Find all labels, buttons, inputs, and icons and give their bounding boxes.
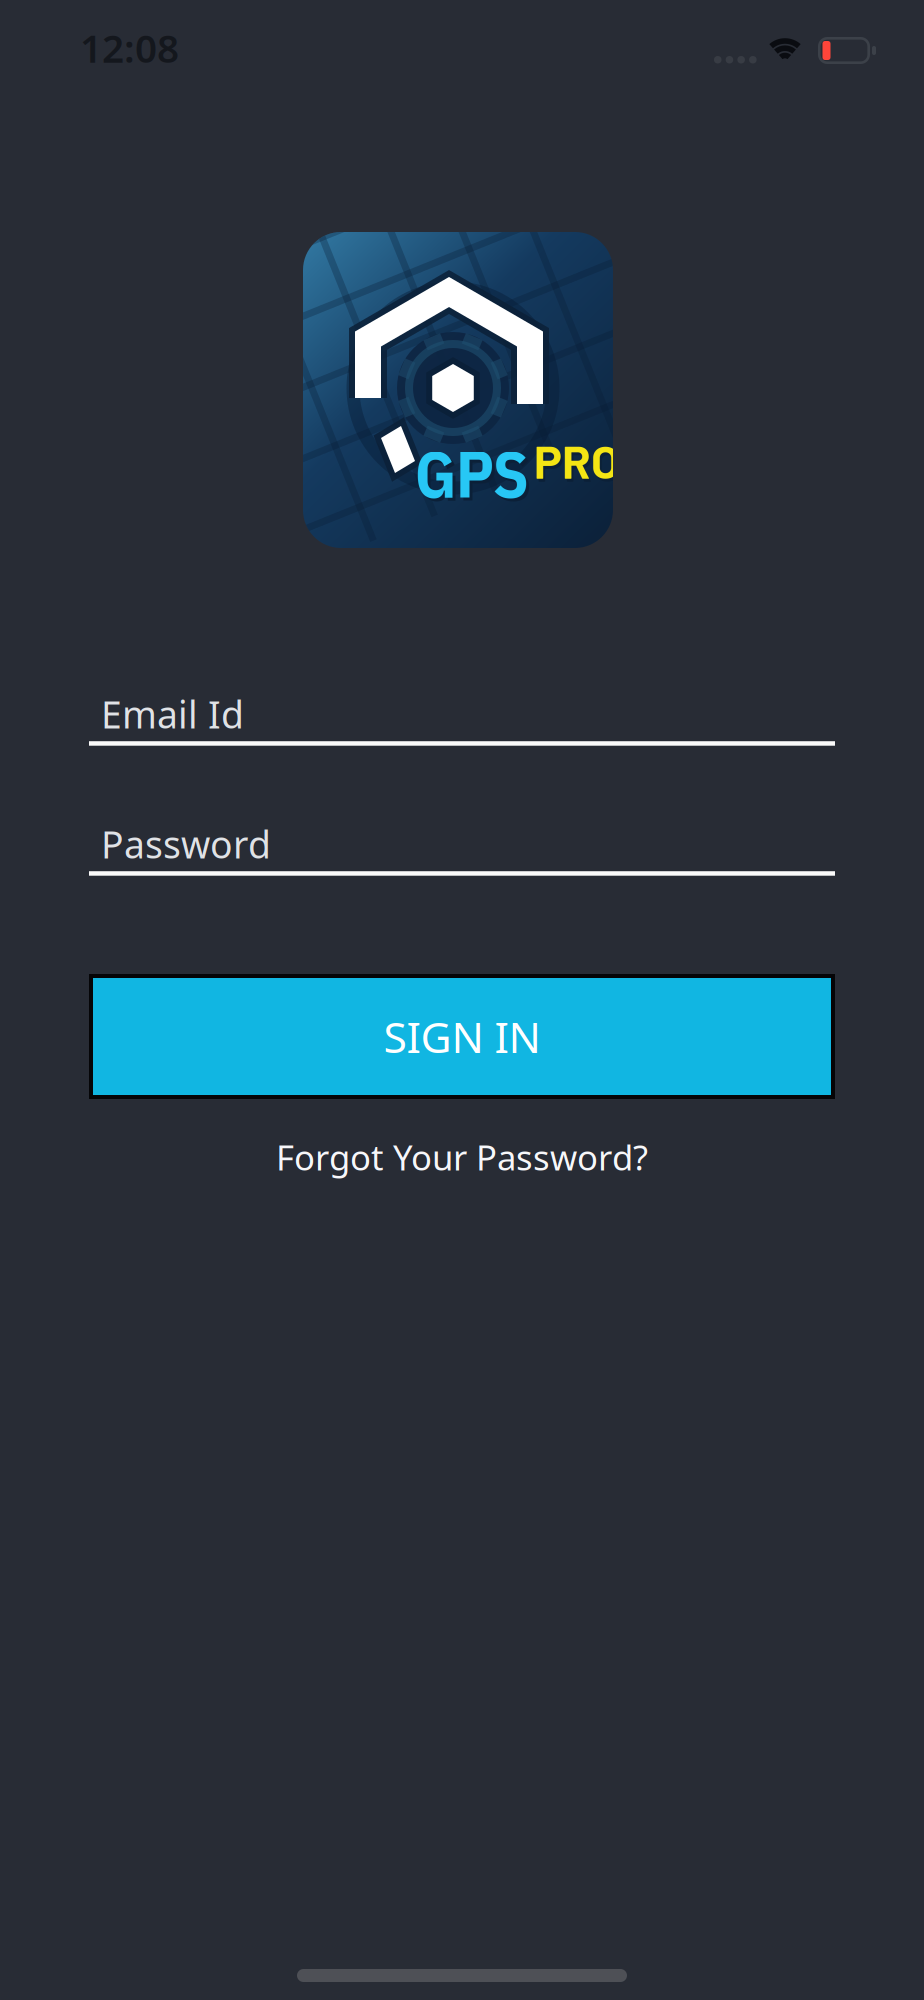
- staticText: PRO: [534, 432, 620, 488]
- staticText: GPS: [418, 435, 532, 518]
- button[interactable]: SIGN IN: [89, 974, 835, 1099]
- staticText: Email Id: [101, 689, 244, 739]
- staticText: Forgot Your Password?: [276, 1134, 648, 1180]
- staticText: GPS: [415, 432, 529, 515]
- staticText: PRO: [536, 435, 622, 491]
- staticText: 12:08: [80, 22, 179, 73]
- button[interactable]: Password: [89, 818, 835, 876]
- staticText: Password: [101, 819, 271, 869]
- button[interactable]: Forgot Your Password?: [0, 1134, 924, 1180]
- button[interactable]: Email Id: [89, 688, 835, 746]
- staticText: SIGN IN: [383, 1008, 540, 1065]
